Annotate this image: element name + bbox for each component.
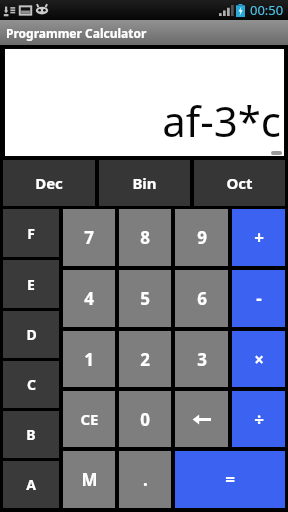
button[interactable]: 7: [63, 209, 115, 266]
button[interactable]: 3: [175, 331, 228, 387]
button[interactable]: ×: [232, 331, 285, 387]
button[interactable]: ÷: [232, 391, 285, 447]
button[interactable]: CE: [63, 391, 115, 447]
staticText: D: [26, 325, 37, 344]
button[interactable]: Backspace: [175, 391, 228, 447]
button[interactable]: C: [3, 361, 59, 408]
staticText: 1: [84, 348, 94, 371]
staticText: CE: [80, 409, 99, 429]
button[interactable]: 9: [175, 209, 228, 266]
button[interactable]: B: [3, 411, 59, 458]
button[interactable]: 8: [119, 209, 171, 266]
button[interactable]: A: [3, 461, 59, 508]
staticText: 7: [84, 226, 94, 249]
staticText: 6: [197, 287, 207, 310]
staticText: Dec: [35, 173, 63, 193]
staticText: 4: [84, 287, 94, 310]
staticText: F: [27, 224, 35, 243]
staticText: 5: [140, 287, 150, 310]
button[interactable]: 4: [63, 270, 115, 327]
staticText: af-3*c: [162, 92, 281, 149]
staticText: -: [256, 287, 262, 310]
staticText: 2: [140, 348, 150, 371]
staticText: 00:50: [250, 1, 284, 19]
staticText: 9: [197, 226, 207, 249]
staticText: Bin: [132, 173, 157, 193]
staticText: M: [81, 468, 98, 491]
button[interactable]: .: [119, 451, 171, 508]
button[interactable]: 2: [119, 331, 171, 387]
staticText: 0: [140, 408, 150, 431]
button[interactable]: M: [63, 451, 115, 508]
staticText: .: [143, 468, 148, 491]
button[interactable]: =: [175, 451, 285, 508]
staticText: E: [27, 275, 35, 294]
staticText: +: [254, 226, 264, 249]
button[interactable]: 5: [119, 270, 171, 327]
staticText: Programmer Calculator: [6, 25, 147, 41]
staticText: ×: [254, 348, 264, 371]
staticText: 8: [140, 226, 150, 249]
staticText: B: [26, 425, 36, 444]
staticText: =: [225, 468, 235, 491]
button[interactable]: D: [3, 311, 59, 358]
button[interactable]: Bin: [99, 160, 190, 206]
staticText: ÷: [254, 408, 264, 431]
button[interactable]: 0: [119, 391, 171, 447]
button[interactable]: F: [3, 209, 59, 257]
staticText: 3: [197, 348, 207, 371]
staticText: A: [26, 475, 36, 494]
button[interactable]: E: [3, 260, 59, 308]
button[interactable]: +: [232, 209, 285, 266]
button[interactable]: 6: [175, 270, 228, 327]
staticText: C: [27, 375, 36, 394]
staticText: Oct: [226, 173, 253, 193]
button[interactable]: -: [232, 270, 285, 327]
button[interactable]: Dec: [3, 160, 95, 206]
button[interactable]: 1: [63, 331, 115, 387]
button[interactable]: Oct: [194, 160, 285, 206]
